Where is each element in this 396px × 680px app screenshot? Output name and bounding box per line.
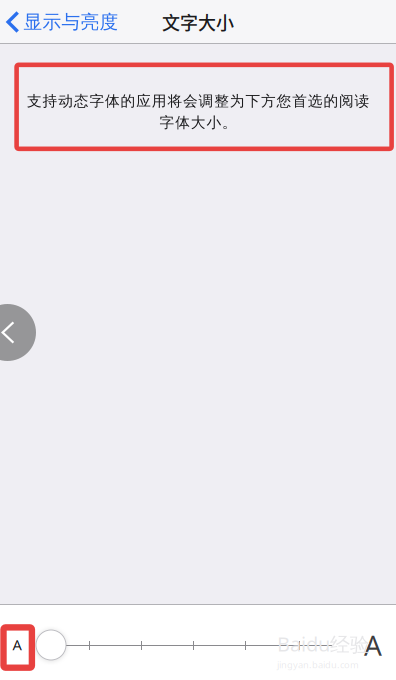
- button[interactable]: Back: [0, 304, 36, 361]
- button[interactable]: A: [354, 626, 392, 664]
- staticText: 显示与亮度: [23, 10, 118, 34]
- button[interactable]: 显示与亮度: [0, 0, 130, 44]
- staticText: Baidu经验: [277, 630, 370, 657]
- staticText: jingyan.baidu.com: [277, 658, 359, 671]
- button[interactable]: A: [0, 621, 34, 668]
- staticText: A: [364, 626, 382, 664]
- staticText: 文字大小: [162, 9, 234, 35]
- staticText: A: [12, 634, 21, 654]
- staticText: 支持动态字体的应用将会调整为下方您首选的阅读字体大小。: [27, 92, 369, 132]
